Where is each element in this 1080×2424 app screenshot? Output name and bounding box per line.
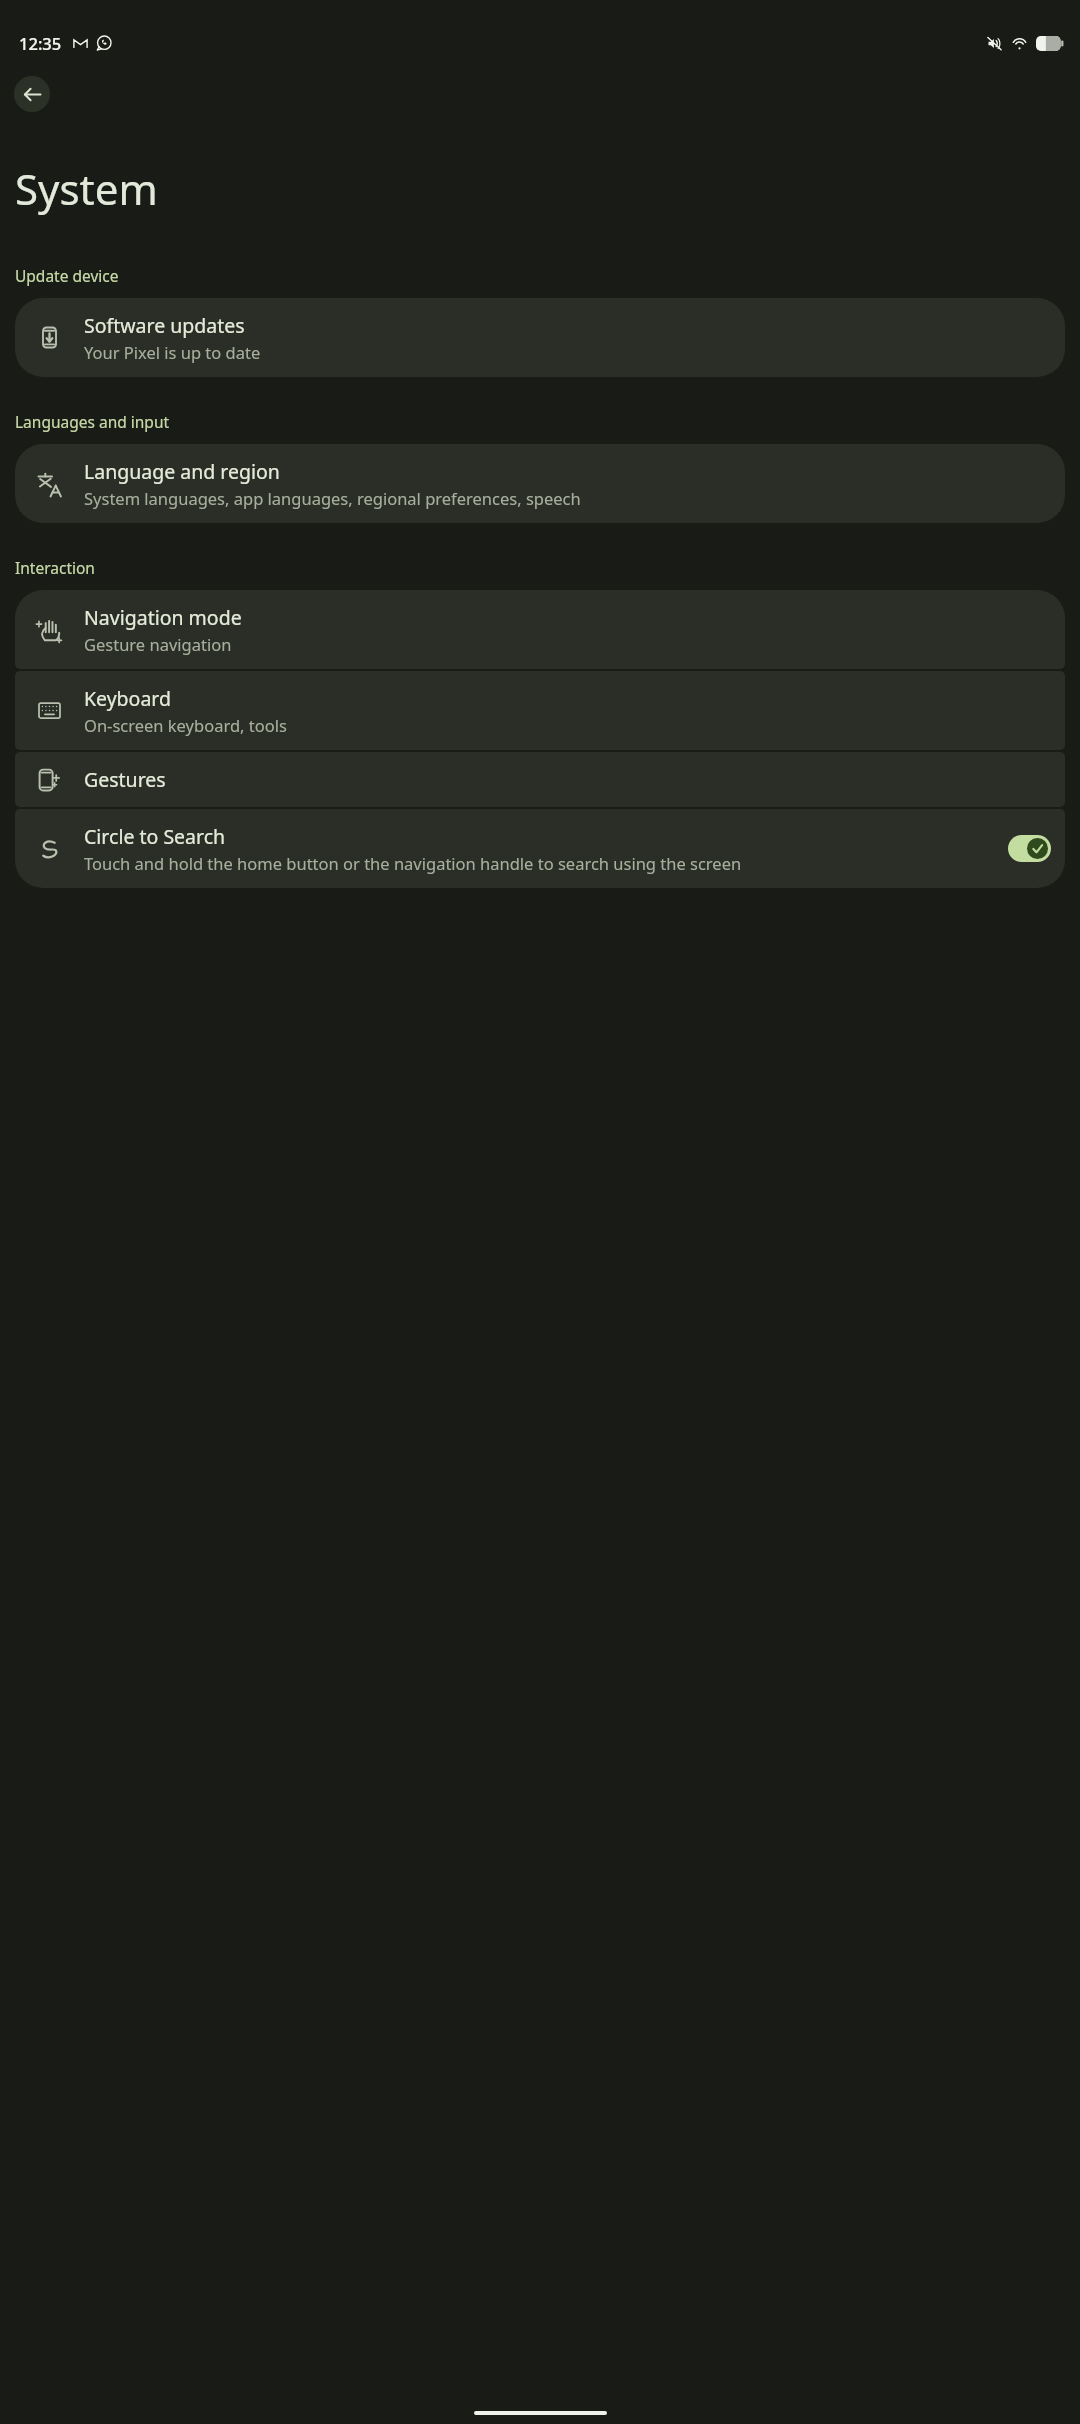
staticText: Language and region (84, 458, 280, 485)
button[interactable]: Software updates (15, 298, 1065, 377)
staticText: Touch and hold the home button or the na… (84, 852, 742, 874)
staticText: Interaction (15, 557, 95, 578)
staticText: Your Pixel is up to date (84, 341, 261, 363)
staticText: On-screen keyboard, tools (84, 714, 287, 736)
staticText: Gesture navigation (84, 633, 232, 655)
staticText: System (15, 160, 158, 217)
button[interactable]: Circle to Search (15, 809, 1065, 888)
staticText: Navigation mode (84, 604, 242, 631)
staticText: Languages and input (15, 411, 170, 432)
staticText: Software updates (84, 312, 245, 339)
button[interactable]: Language and region (15, 444, 1065, 523)
staticText: Gestures (84, 766, 166, 793)
button[interactable]: Circle to Search toggle (1008, 835, 1051, 862)
staticText: System languages, app languages, regiona… (84, 487, 581, 509)
button[interactable]: Gestures (15, 752, 1065, 807)
staticText: Circle to Search (84, 823, 226, 850)
staticText: 12:35 (19, 32, 62, 54)
button[interactable]: Back (14, 76, 50, 112)
button[interactable]: Keyboard (15, 671, 1065, 750)
staticText: Update device (15, 265, 119, 286)
button[interactable]: Navigation mode (15, 590, 1065, 669)
staticText: Keyboard (84, 685, 172, 712)
